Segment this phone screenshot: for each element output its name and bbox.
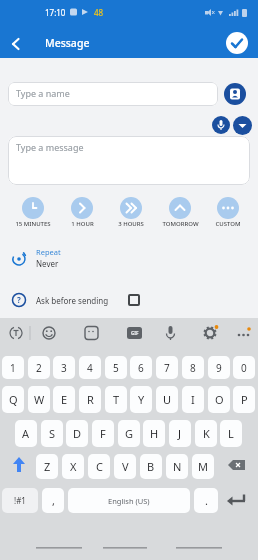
button[interactable]: [161, 324, 179, 342]
button[interactable]: .: [194, 488, 218, 513]
button[interactable]: [212, 116, 230, 134]
staticText: S: [49, 426, 56, 441]
button[interactable]: Z: [36, 454, 58, 479]
button[interactable]: S: [41, 420, 63, 447]
button[interactable]: A: [15, 420, 37, 447]
button[interactable]: C: [88, 454, 110, 479]
button[interactable]: [233, 116, 252, 135]
button[interactable]: 5: [105, 356, 127, 379]
staticText: CUSTOM: [215, 220, 241, 228]
button[interactable]: [217, 197, 239, 219]
button[interactable]: 4: [79, 356, 101, 379]
staticText: U: [163, 392, 172, 407]
button[interactable]: X: [62, 454, 84, 479]
button[interactable]: Q: [2, 386, 24, 413]
button[interactable]: Y: [130, 386, 152, 413]
staticText: Type a message: [16, 141, 84, 153]
staticText: R: [87, 392, 94, 407]
button[interactable]: Type a name: [8, 82, 218, 106]
button[interactable]: [169, 197, 191, 219]
button[interactable]: [22, 197, 44, 219]
staticText: Ask before sending: [36, 295, 109, 306]
staticText: Never: [36, 258, 59, 269]
button[interactable]: [7, 324, 25, 342]
button[interactable]: [224, 453, 250, 479]
button[interactable]: J: [169, 420, 191, 447]
button[interactable]: [224, 83, 246, 105]
button[interactable]: K: [195, 420, 217, 447]
button[interactable]: P: [233, 386, 255, 413]
button[interactable]: [120, 197, 142, 219]
button[interactable]: 7: [156, 356, 178, 379]
staticText: Type a name: [16, 87, 70, 99]
button[interactable]: 9: [208, 356, 230, 379]
button[interactable]: [201, 324, 219, 342]
staticText: F: [100, 426, 106, 441]
staticText: W: [34, 392, 45, 407]
staticText: 5: [113, 361, 119, 375]
staticText: !#1: [14, 495, 26, 506]
staticText: L: [228, 426, 234, 441]
staticText: Y: [138, 392, 145, 407]
button[interactable]: V: [114, 454, 136, 479]
button[interactable]: [235, 324, 253, 342]
button[interactable]: H: [143, 420, 165, 447]
staticText: B: [147, 459, 155, 474]
button[interactable]: F: [92, 420, 114, 447]
button[interactable]: D: [66, 420, 88, 447]
button[interactable]: 1: [2, 356, 24, 379]
button[interactable]: Type a message: [8, 136, 250, 185]
button[interactable]: M: [192, 454, 214, 479]
staticText: Repeat: [36, 247, 61, 257]
button[interactable]: U: [156, 386, 178, 413]
button[interactable]: O: [208, 386, 230, 413]
button[interactable]: [224, 488, 250, 513]
staticText: Q: [9, 392, 18, 407]
staticText: TOMORROW: [162, 220, 199, 228]
button[interactable]: [226, 32, 248, 54]
button[interactable]: B: [140, 454, 162, 479]
button[interactable]: [6, 453, 32, 479]
button[interactable]: T: [105, 386, 127, 413]
staticText: 3: [61, 361, 67, 375]
staticText: J: [178, 426, 182, 441]
button[interactable]: [71, 197, 93, 219]
button[interactable]: [83, 324, 101, 342]
button[interactable]: 3: [53, 356, 75, 379]
button[interactable]: G: [118, 420, 140, 447]
staticText: 48: [94, 7, 104, 18]
button[interactable]: ?: [0, 286, 258, 314]
button[interactable]: L: [220, 420, 242, 447]
staticText: N: [173, 459, 182, 474]
button[interactable]: N: [166, 454, 188, 479]
button[interactable]: I: [182, 386, 204, 413]
button[interactable]: W: [28, 386, 50, 413]
staticText: 1: [10, 361, 16, 375]
staticText: K: [203, 426, 210, 441]
staticText: Message: [45, 36, 90, 50]
button[interactable]: 8: [182, 356, 204, 379]
button[interactable]: Repeat: [0, 244, 258, 274]
button[interactable]: 6: [130, 356, 152, 379]
button[interactable]: R: [79, 386, 101, 413]
button[interactable]: [8, 36, 24, 52]
staticText: C: [96, 459, 103, 474]
button[interactable]: [40, 324, 58, 342]
button[interactable]: 2: [28, 356, 50, 379]
staticText: D: [73, 426, 82, 441]
button[interactable]: ,: [42, 488, 64, 513]
staticText: I: [191, 392, 195, 407]
button[interactable]: !#1: [2, 488, 38, 513]
staticText: English (US): [108, 496, 150, 506]
button[interactable]: E: [53, 386, 75, 413]
staticText: H: [150, 426, 159, 441]
staticText: G: [125, 426, 134, 441]
button[interactable]: 0: [233, 356, 255, 379]
staticText: Z: [44, 459, 51, 474]
button[interactable]: [125, 324, 143, 342]
staticText: 9: [216, 361, 222, 375]
staticText: X: [70, 459, 77, 474]
staticText: ,: [52, 493, 55, 508]
button[interactable]: English (US): [68, 488, 190, 513]
staticText: O: [215, 392, 224, 407]
